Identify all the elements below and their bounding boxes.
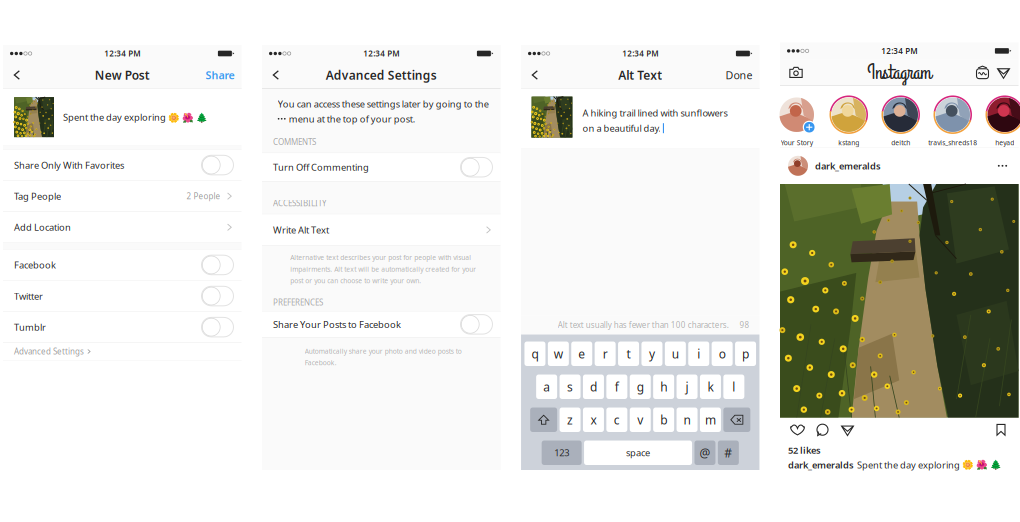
staticText: 98 [739,320,749,330]
button[interactable]: Add Location [3,212,241,242]
staticText: Alt text usually has fewer than 100 char… [558,320,729,330]
staticText: Your Story [781,138,813,147]
staticText: 12:34 PM [104,48,140,59]
button[interactable]: Save [990,418,1011,442]
staticText: Turn Off Commenting [273,161,369,173]
button[interactable]: a [536,374,557,399]
button[interactable]: n [676,407,697,432]
staticText: q [531,346,538,362]
staticText: u [672,346,679,362]
staticText: j [685,379,688,395]
button[interactable]: travis_shreds18 [927,95,979,147]
button[interactable]: Tumblr [3,312,241,342]
staticText: i [697,346,700,362]
button[interactable]: g [630,374,651,399]
button[interactable]: m [700,407,721,432]
staticText: space [626,447,650,459]
staticText: Instagram [867,58,931,86]
button[interactable]: Twitter [3,281,241,311]
staticText: 52 likes [788,444,821,456]
button[interactable]: Back [528,66,544,84]
staticText: o [719,346,726,362]
staticText: s [567,379,573,395]
button[interactable]: kstang [823,95,875,147]
button[interactable]: IGTV [974,63,990,81]
staticText: 123 [554,447,569,459]
staticText: Advanced Settings [326,67,437,83]
staticText: kstang [838,138,859,147]
button[interactable]: 123 [542,440,582,465]
button[interactable]: # [718,440,739,465]
button[interactable]: e [571,341,592,366]
button[interactable]: Share [205,66,234,84]
button[interactable]: Delete [723,407,750,432]
button[interactable]: d [583,374,604,399]
button[interactable]: heyad [979,95,1020,147]
staticText: n [683,412,690,428]
button[interactable]: Facebook [3,250,241,280]
staticText: Automatically share your photo and video… [305,347,462,356]
staticText: @ [699,445,710,461]
button[interactable]: Turn Off Commenting [262,153,500,181]
staticText: 12:34 PM [363,48,399,59]
button[interactable]: Share Your Posts to Facebook [262,312,500,337]
button[interactable]: Advanced Settings [3,343,241,360]
button[interactable]: Your Story [771,95,823,147]
button[interactable]: Share Only With Favorites [3,150,241,180]
button[interactable]: space [584,440,692,465]
button[interactable]: s [559,374,580,399]
button[interactable]: Write Alt Text [262,214,500,245]
button[interactable]: Direct Messages [995,63,1011,81]
staticText: Spent the day exploring 🌼 🌺 🌲 [63,111,208,123]
staticText: a [543,379,550,395]
staticText: r [603,346,608,362]
button[interactable]: Like [787,418,808,442]
button[interactable]: Shift [530,407,557,432]
button[interactable]: l [723,374,744,399]
staticText: Tumblr [14,321,46,333]
staticText: 12:34 PM [622,48,658,59]
button[interactable]: y [641,341,662,366]
button[interactable]: z [559,407,580,432]
button[interactable]: Back [269,66,285,84]
staticText: k [707,379,713,395]
button[interactable]: Camera [787,63,805,81]
button[interactable]: u [665,341,686,366]
button[interactable]: h [653,374,674,399]
button[interactable]: Share [837,418,858,442]
staticText: g [637,379,644,395]
staticText: Share Your Posts to Facebook [273,318,401,331]
staticText: deitch [891,138,910,147]
button[interactable]: x [583,407,604,432]
staticText: Facebook. [305,358,337,367]
button[interactable]: Tag People [3,181,241,211]
button[interactable]: More options [993,158,1011,174]
button[interactable]: c [606,407,627,432]
button[interactable]: w [548,341,569,366]
button[interactable]: o [712,341,733,366]
button[interactable]: r [595,341,616,366]
button[interactable]: i [688,341,709,366]
staticText: Done [725,68,752,82]
button[interactable]: deitch [875,95,927,147]
button[interactable]: f [606,374,627,399]
staticText: 12:34 PM [881,46,917,56]
button[interactable]: @ [694,440,715,465]
button[interactable]: q [524,341,545,366]
button[interactable]: v [630,407,651,432]
staticText: A hiking trail lined with sunflowers [582,107,727,119]
button[interactable]: t [618,341,639,366]
button[interactable]: Done [725,66,752,84]
button[interactable]: k [700,374,721,399]
button[interactable]: Comment [812,418,833,442]
staticText: Twitter [14,290,43,302]
staticText: dark_emeralds [788,459,854,471]
staticText: m [705,412,716,428]
button[interactable]: Back [10,66,26,84]
button[interactable]: b [653,407,674,432]
staticText: Share [205,68,234,82]
button[interactable]: j [676,374,697,399]
staticText: l [732,379,735,395]
button[interactable]: p [735,341,756,366]
staticText: h [660,379,667,395]
